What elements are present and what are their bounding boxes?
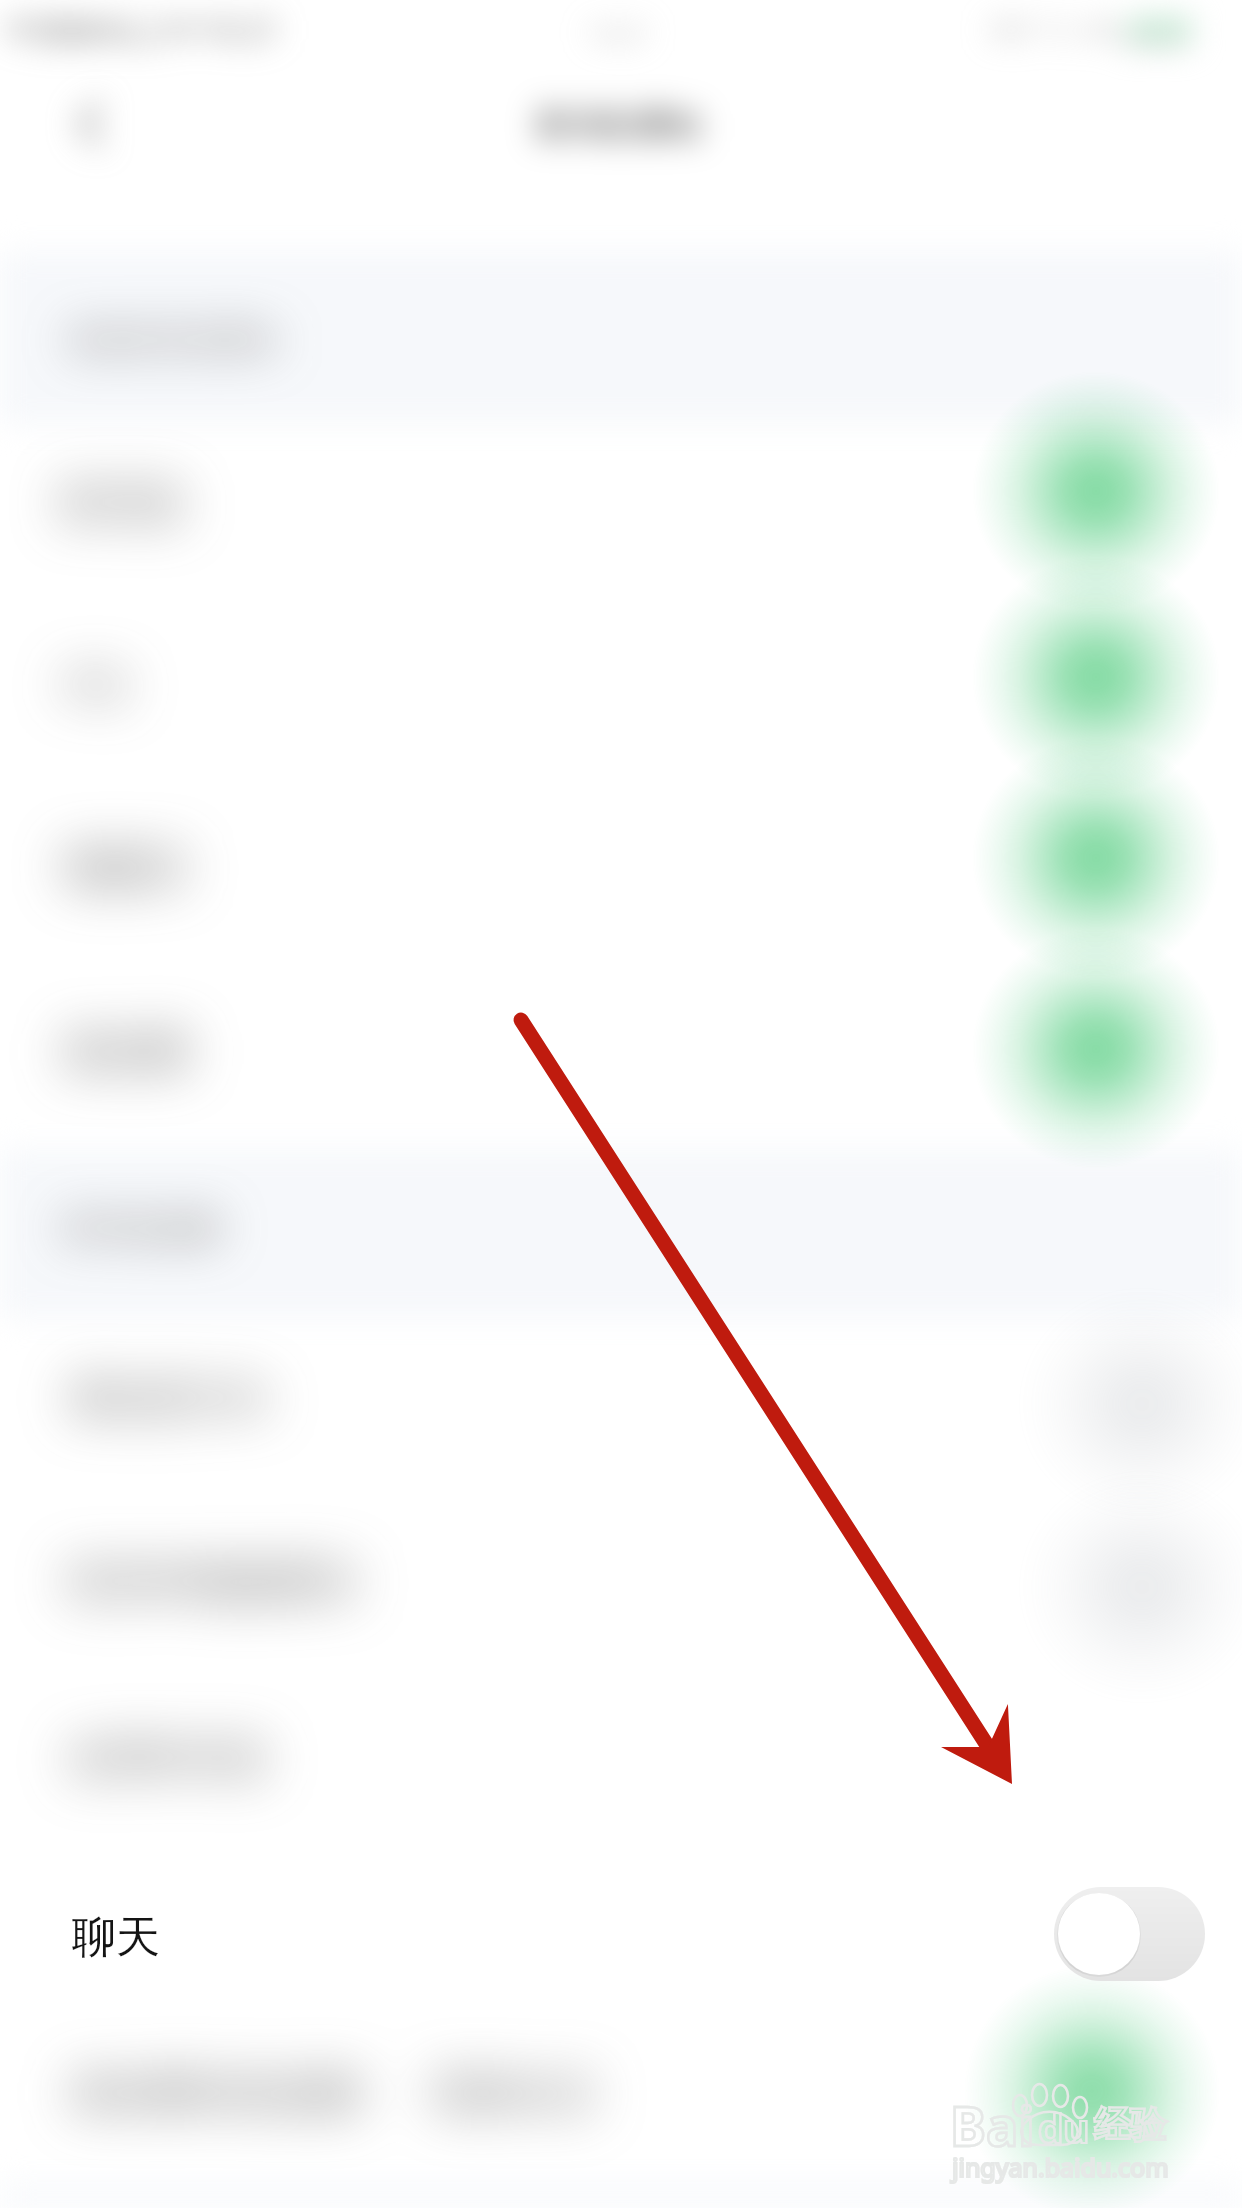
- button[interactable]: 朋友圈: [0, 971, 1242, 1153]
- staticText: 经验: [1094, 2102, 1166, 2147]
- button[interactable]: 聊天: [0, 1842, 1242, 2028]
- button[interactable]: 聊天 notification switch, off: [1054, 1887, 1205, 1981]
- staticText: du: [1038, 2100, 1090, 2154]
- staticText: 通知显示内: [68, 1373, 268, 1423]
- staticText: 朋友圈: [62, 1026, 188, 1079]
- staticText: HD ↑↓ 4G ▃▅▇: [990, 11, 1186, 46]
- staticText: 使用听筒器: [68, 1733, 268, 1783]
- staticText: 中国移动上午10:21: [6, 8, 280, 52]
- staticText: 新消息通知: [536, 104, 701, 146]
- staticText: jingyan.baidu.com: [952, 2150, 1169, 2184]
- button[interactable]: 视频通话: [0, 789, 1242, 971]
- staticText: 视频动态: [430, 2067, 598, 2120]
- staticText: 新消息: [60, 477, 186, 530]
- staticText: 聊天: [72, 1910, 160, 1965]
- staticText: 新消息提醒: [62, 1208, 222, 1248]
- staticText: 语音和视频通话: [64, 1556, 358, 1609]
- button[interactable]: 朋友圈消息提醒: [0, 2028, 1242, 2194]
- button[interactable]: 语音和视频通话: [0, 1500, 1242, 1682]
- button[interactable]: 使用听筒播放: [0, 1676, 1242, 1842]
- button[interactable]: 声音: [0, 607, 1242, 789]
- button[interactable]: 通知显示内容: [0, 1318, 1242, 1500]
- staticText: Bai: [950, 2088, 1035, 2162]
- button[interactable]: 新消息: [0, 425, 1242, 607]
- staticText: 视频话: [62, 842, 188, 895]
- button[interactable]: 接收新消息通知: [0, 250, 1242, 425]
- button[interactable]: Back: [24, 68, 148, 184]
- staticText: 朋友圈消息提醒: [70, 2067, 364, 2120]
